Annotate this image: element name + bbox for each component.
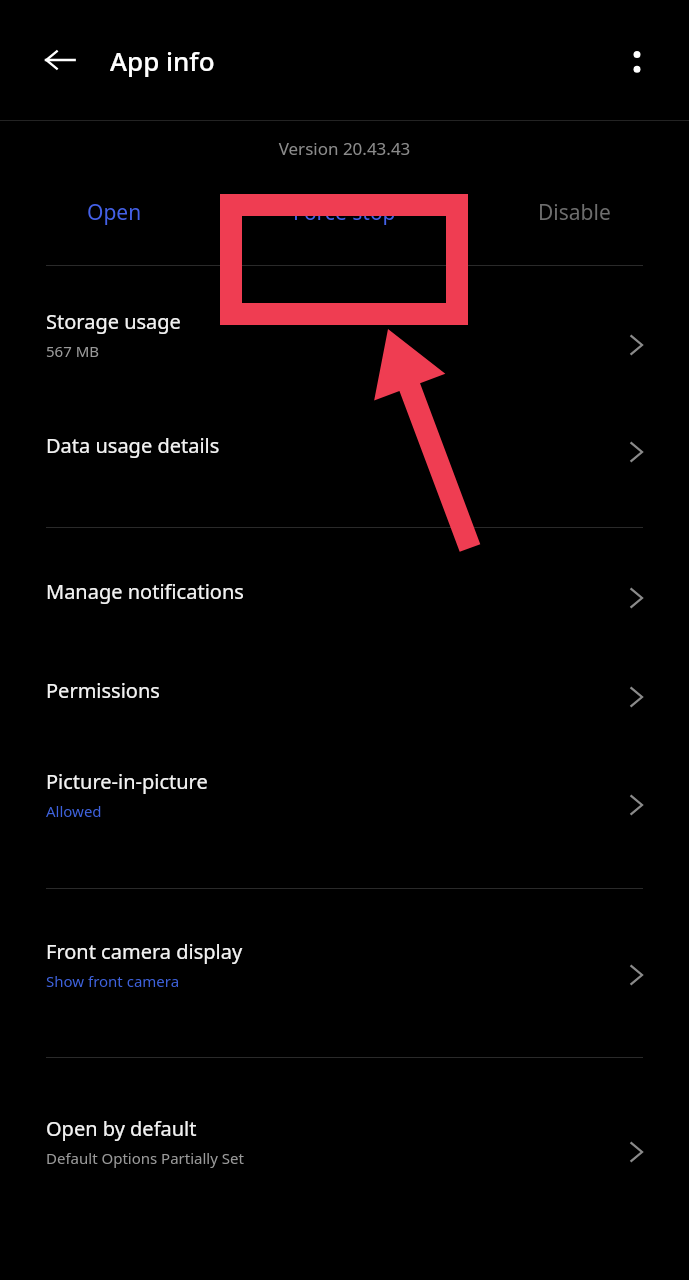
staticText: Data usage details [46,432,220,459]
button[interactable]: Back [32,32,88,88]
button[interactable]: Picture-in-picture [0,768,689,842]
button[interactable]: More options [609,32,665,88]
button[interactable]: Manage notifications [0,578,689,618]
button[interactable]: Disable [459,160,689,265]
staticText: Open [87,198,142,227]
staticText: Show front camera [46,971,180,991]
button[interactable]: Storage usage [0,308,689,382]
button[interactable]: Open [0,160,229,265]
staticText: Default Options Partially Set [46,1148,244,1168]
button[interactable]: Force stop [229,160,459,265]
staticText: Force stop [293,198,396,227]
staticText: Manage notifications [46,578,244,605]
staticText: 567 MB [46,341,99,361]
staticText: Picture-in-picture [46,768,208,795]
staticText: Permissions [46,677,160,704]
staticText: Storage usage [46,308,181,335]
button[interactable]: Front camera display [0,938,689,1012]
button[interactable]: Data usage details [0,432,689,472]
staticText: Version 20.43.43 [0,137,689,160]
button[interactable]: Open by default [0,1115,689,1189]
staticText: Allowed [46,801,102,821]
staticText: Open by default [46,1115,197,1142]
staticText: Disable [538,198,611,227]
staticText: App info [110,43,215,78]
staticText: Front camera display [46,938,243,965]
button[interactable]: Permissions [0,677,689,717]
